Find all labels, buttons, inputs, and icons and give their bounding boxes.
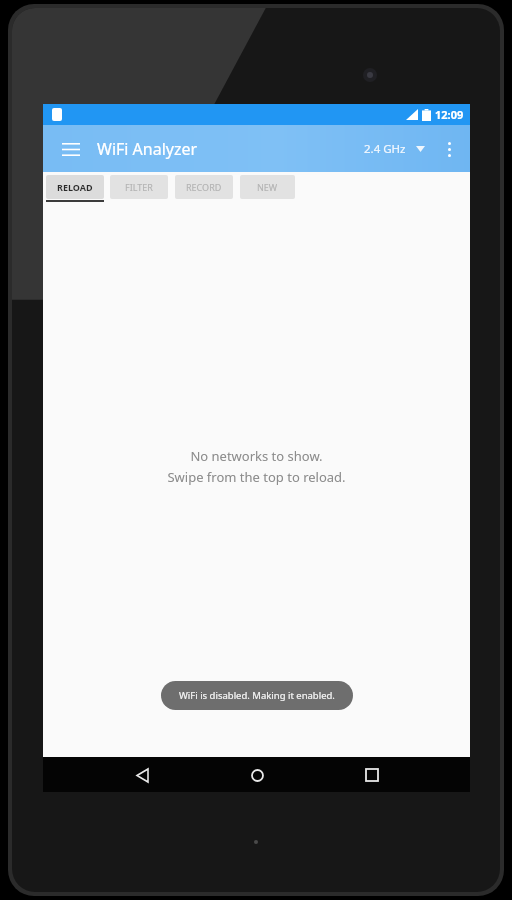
button[interactable]: NEW <box>240 175 295 199</box>
staticText: WiFi Analyzer <box>97 138 198 160</box>
staticText: WiFi is disabled. Making it enabled. <box>179 689 335 702</box>
button[interactable]: Back <box>125 758 159 792</box>
staticText: No networks to show. <box>190 447 323 465</box>
staticText: Swipe from the top to reload. <box>167 468 346 486</box>
button[interactable]: 2.4 GHz <box>358 133 431 165</box>
staticText: 2.4 GHz <box>364 141 406 157</box>
staticText: NEW <box>257 181 278 193</box>
staticText: 12:09 <box>435 107 464 122</box>
staticText: RELOAD <box>57 181 93 193</box>
button[interactable]: FILTER <box>110 175 168 199</box>
button[interactable]: RECORD <box>175 175 233 199</box>
staticText: FILTER <box>125 181 153 193</box>
staticText: RECORD <box>186 181 222 193</box>
button[interactable]: Open navigation drawer <box>51 129 91 169</box>
button[interactable]: Home <box>240 758 274 792</box>
button[interactable]: RELOAD <box>46 175 104 202</box>
button[interactable]: More options <box>431 131 467 167</box>
button[interactable]: Recent apps <box>355 758 389 792</box>
